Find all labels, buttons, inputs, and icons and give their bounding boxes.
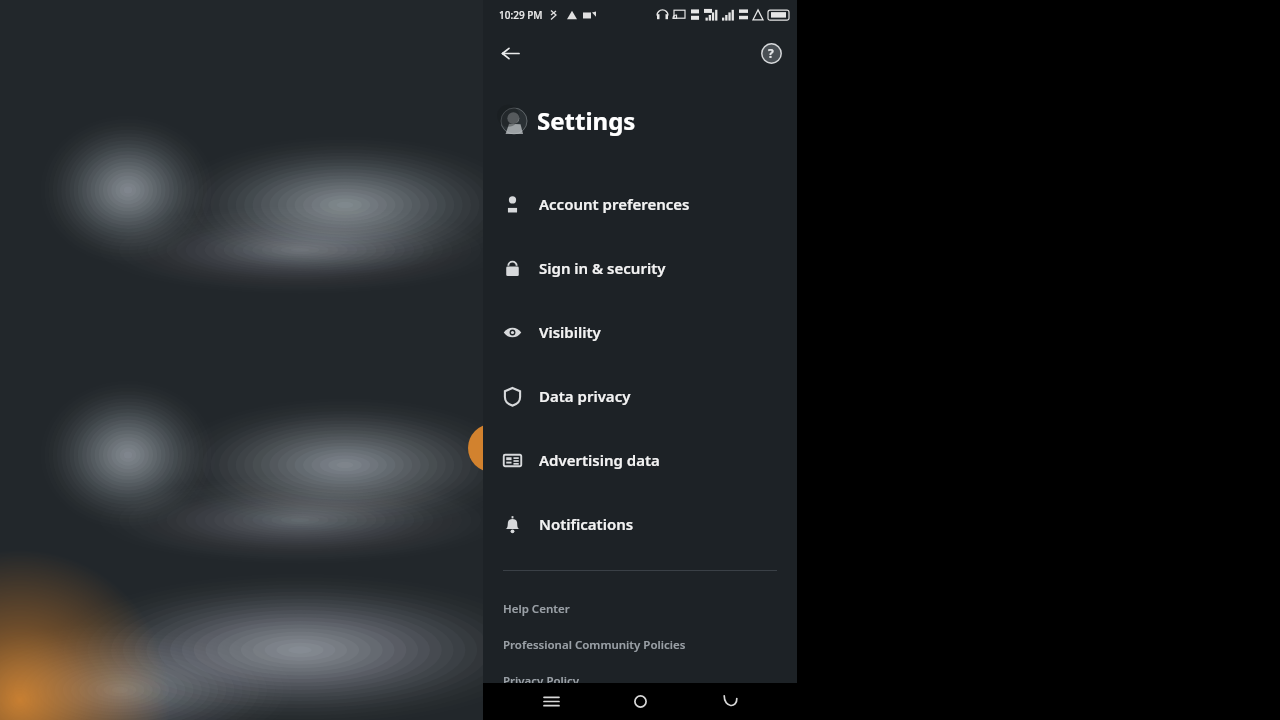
button[interactable]: Accessibility [483, 699, 797, 720]
button[interactable]: Data privacy [483, 364, 797, 428]
staticText: Accessibility [503, 702, 572, 718]
button[interactable]: Professional Community Policies [483, 627, 797, 663]
staticText: Sign in & security [539, 258, 666, 278]
staticText: Account preferences [539, 194, 690, 214]
button[interactable]: Sign in & security [483, 236, 797, 300]
staticText: Data privacy [539, 386, 631, 406]
staticText: Privacy Policy [503, 673, 580, 689]
staticText: Advertising data [539, 450, 660, 470]
staticText: Settings [537, 104, 636, 137]
button[interactable]: Advertising data [483, 428, 797, 492]
button[interactable]: Back [493, 36, 527, 70]
staticText: Notifications [539, 514, 634, 534]
button[interactable]: Back [708, 683, 752, 720]
button[interactable]: Help [755, 37, 787, 69]
staticText: ? [768, 45, 774, 61]
button[interactable]: Recents [529, 683, 573, 720]
button[interactable]: Home [618, 683, 662, 720]
staticText: Help Center [503, 601, 570, 617]
staticText: 10:29 PM [499, 8, 543, 22]
button[interactable]: Help Center [483, 591, 797, 627]
button[interactable]: Visibility [483, 300, 797, 364]
button[interactable]: Privacy Policy [483, 663, 797, 699]
button[interactable]: Notifications [483, 492, 797, 556]
button[interactable]: Account preferences [483, 172, 797, 236]
staticText: Professional Community Policies [503, 637, 686, 653]
staticText: Visibility [539, 322, 601, 342]
